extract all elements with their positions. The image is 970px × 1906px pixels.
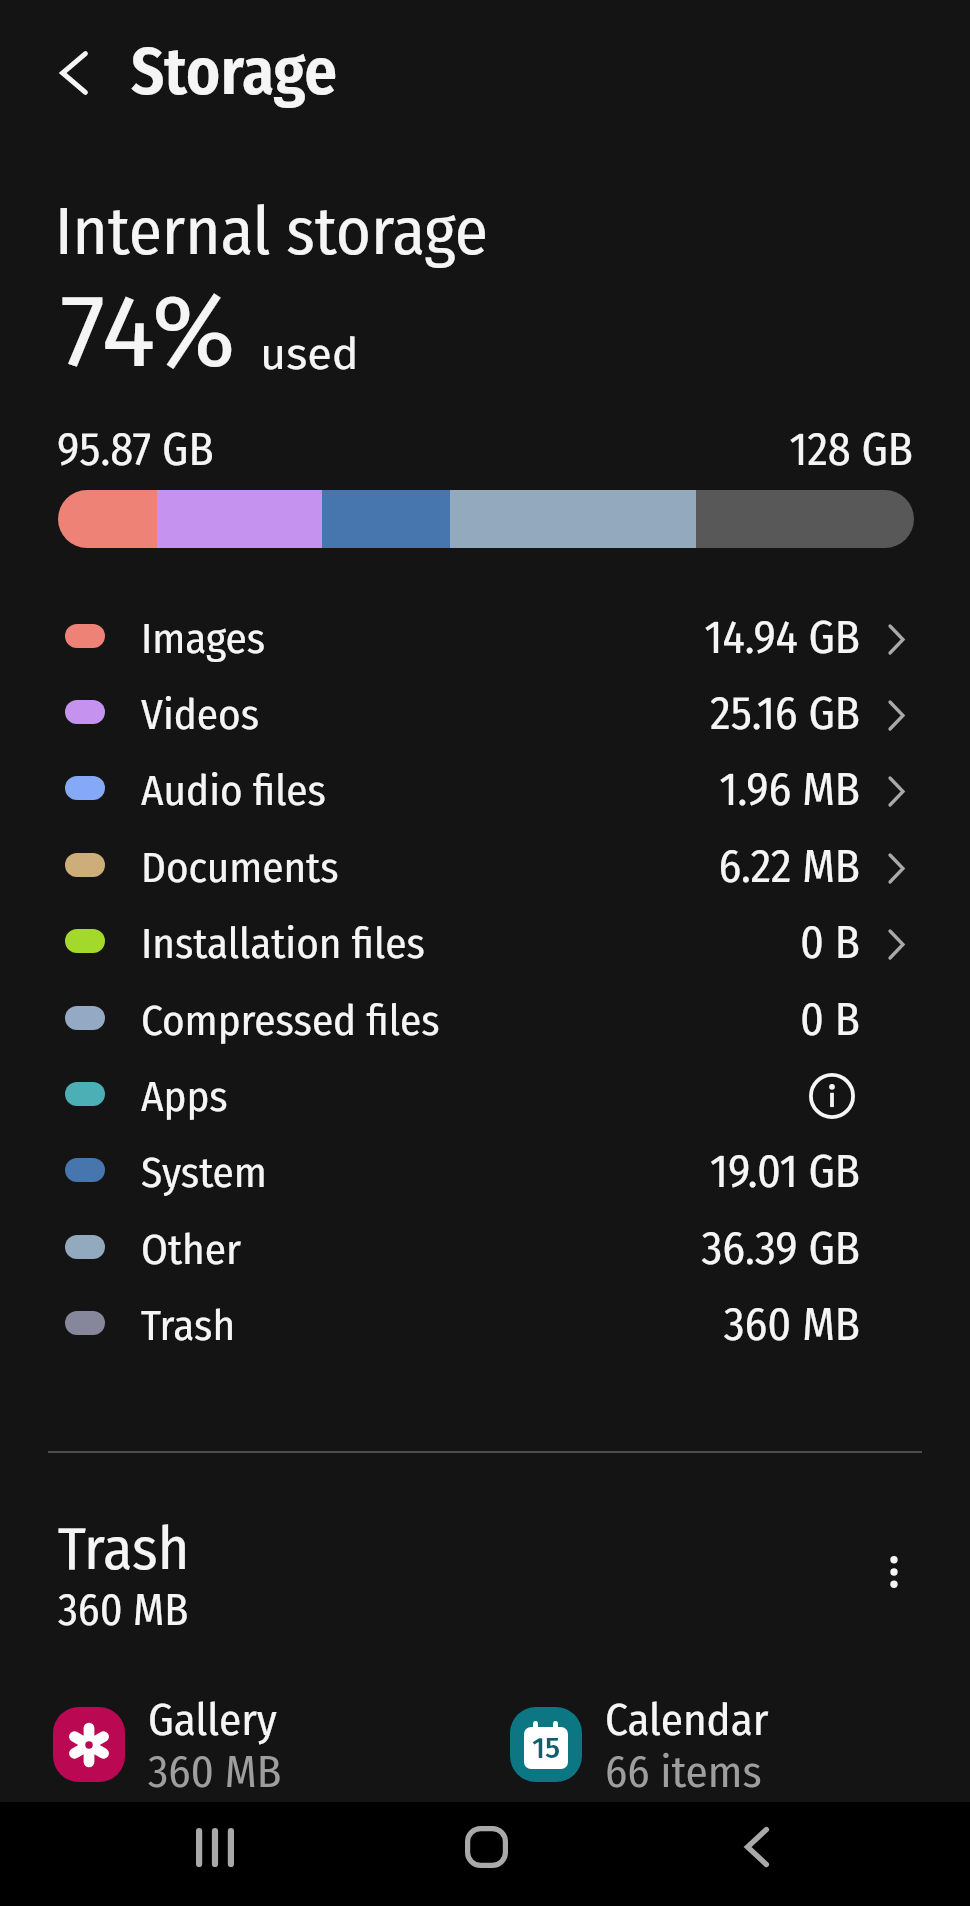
button[interactable]: Home — [432, 1795, 540, 1899]
staticText: Trash — [141, 1300, 236, 1352]
button[interactable]: Videos — [0, 691, 970, 767]
button[interactable]: Back — [703, 1795, 811, 1899]
staticText: Storage — [131, 33, 338, 111]
button[interactable]: Documents — [0, 844, 970, 920]
staticText: 0 B — [360, 915, 860, 970]
button[interactable]: Installation files — [0, 920, 970, 996]
button[interactable]: More options — [849, 1527, 939, 1617]
staticText: Installation files — [141, 918, 425, 970]
button[interactable]: Images — [0, 615, 970, 691]
button[interactable]: Compressed files — [0, 997, 970, 1073]
staticText: Audio files — [141, 765, 326, 817]
staticText: 95.87 GB — [57, 422, 214, 477]
staticText: 6.22 MB — [360, 839, 860, 894]
staticText: System — [141, 1147, 267, 1199]
button[interactable]: Navigate up — [18, 17, 130, 129]
staticText: 19.01 GB — [360, 1144, 860, 1199]
button[interactable]: Audio files — [0, 767, 970, 843]
staticText: 15 — [532, 1731, 561, 1766]
button[interactable]: Other — [0, 1226, 970, 1302]
button[interactable]: 15 — [501, 1693, 921, 1797]
staticText: Internal storage — [55, 191, 488, 271]
staticText: Other — [141, 1224, 241, 1276]
staticText: 0 B — [360, 992, 860, 1047]
button[interactable]: Trash — [0, 1302, 970, 1378]
staticText: 360 MB — [360, 1297, 860, 1352]
staticText: 14.94 GB — [360, 610, 860, 665]
staticText: 25.16 GB — [360, 686, 860, 741]
staticText: 1.96 MB — [360, 762, 860, 817]
button[interactable]: System — [0, 1149, 970, 1225]
staticText: 360 MB — [148, 1745, 282, 1799]
staticText: 66 items — [605, 1745, 762, 1799]
staticText: 74% — [60, 271, 236, 393]
staticText: Gallery — [148, 1693, 277, 1747]
button[interactable]: Gallery — [44, 1693, 464, 1797]
staticText: 128 GB — [413, 422, 913, 477]
staticText: Trash — [58, 1513, 190, 1585]
staticText: Calendar — [605, 1693, 769, 1747]
staticText: used — [260, 327, 359, 381]
button[interactable]: Apps — [0, 1073, 970, 1149]
staticText: Apps — [141, 1071, 228, 1123]
button[interactable]: Recents — [161, 1795, 269, 1899]
staticText: Images — [141, 613, 266, 665]
staticText: Documents — [141, 842, 339, 894]
staticText: Compressed files — [141, 995, 440, 1047]
staticText: Videos — [141, 689, 259, 741]
staticText: 36.39 GB — [360, 1221, 860, 1276]
staticText: 360 MB — [58, 1584, 189, 1637]
